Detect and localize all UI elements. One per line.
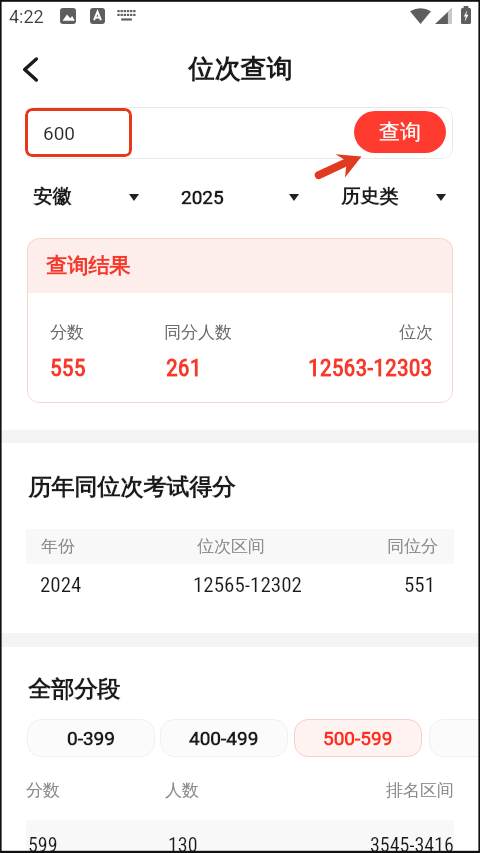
- button[interactable]: 2025: [160, 174, 320, 220]
- staticText: 历史类: [341, 185, 398, 209]
- staticText: 0-399: [67, 727, 115, 749]
- staticText: 500-599: [323, 727, 393, 749]
- staticText: 400-499: [189, 727, 259, 749]
- staticText: 人数: [165, 780, 199, 801]
- staticText: 同分人数: [164, 322, 232, 343]
- staticText: 12565-12302: [193, 573, 302, 598]
- button[interactable]: 查询: [354, 111, 446, 153]
- staticText: 安徽: [33, 185, 71, 209]
- staticText: 600: [43, 122, 76, 144]
- staticText: 查询: [379, 119, 421, 145]
- staticText: 130: [168, 833, 198, 853]
- staticText: 位次区间: [197, 536, 265, 557]
- staticText: 排名区间: [386, 780, 454, 801]
- staticText: 2025: [181, 186, 224, 208]
- staticText: 历年同位次考试得分: [28, 473, 235, 502]
- staticText: 261: [166, 354, 202, 382]
- staticText: 分数: [50, 322, 84, 343]
- button[interactable]: 安徽: [0, 174, 160, 220]
- button[interactable]: Back: [6, 40, 54, 98]
- staticText: 查询结果: [46, 253, 130, 279]
- staticText: 年份: [41, 536, 75, 557]
- button[interactable]: 500-599: [294, 719, 422, 757]
- button[interactable]: 600: [25, 108, 132, 157]
- staticText: 全部分段: [28, 675, 120, 704]
- staticText: 同位分: [387, 536, 438, 557]
- button[interactable]: 400-499: [160, 719, 288, 757]
- staticText: 12563-12303: [308, 354, 433, 382]
- staticText: 位次: [399, 322, 433, 343]
- button[interactable]: 历史类: [320, 174, 480, 220]
- staticText: 分数: [26, 780, 60, 801]
- staticText: 4:22: [9, 6, 44, 27]
- staticText: 3545-3416: [370, 833, 454, 853]
- button[interactable]: [429, 719, 480, 757]
- staticText: 599: [28, 833, 58, 853]
- button[interactable]: 0-399: [27, 719, 155, 757]
- staticText: 2024: [40, 573, 82, 598]
- staticText: 位次查询: [188, 53, 292, 86]
- staticText: 555: [50, 354, 86, 382]
- staticText: 551: [404, 573, 436, 598]
